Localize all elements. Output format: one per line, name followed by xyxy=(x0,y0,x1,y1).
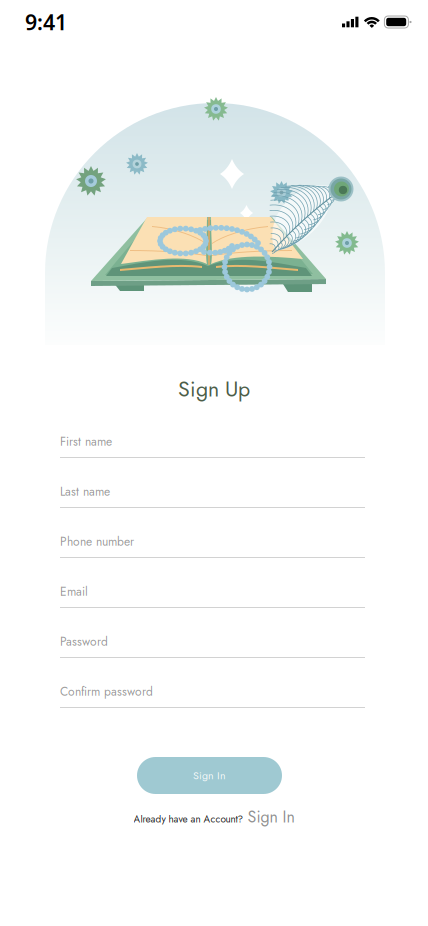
staticText: Confirm password xyxy=(60,683,153,700)
button[interactable]: Sign In xyxy=(137,757,282,794)
staticText: Phone number xyxy=(60,533,134,550)
staticText: First name xyxy=(60,433,112,450)
staticText: Already have an Account? xyxy=(133,812,243,826)
staticText: 9:41 xyxy=(25,8,67,36)
staticText: Last name xyxy=(60,483,110,500)
staticText: Sign Up xyxy=(178,374,250,404)
button[interactable]: Sign In xyxy=(247,805,294,828)
staticText: Email xyxy=(60,583,88,600)
staticText: Sign In xyxy=(193,768,226,783)
staticText: Password xyxy=(60,633,108,650)
staticText: Sign In xyxy=(247,805,294,828)
